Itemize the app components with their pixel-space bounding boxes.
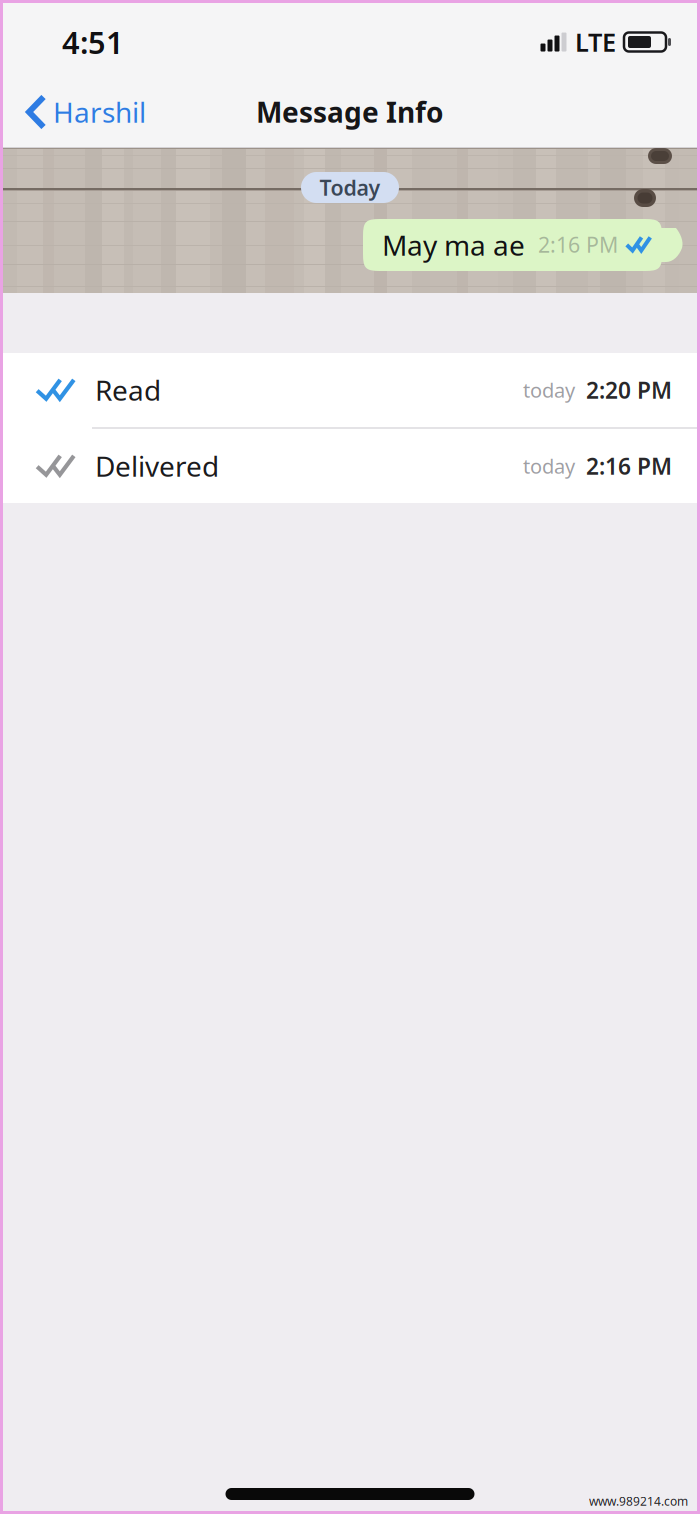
staticText: today xyxy=(523,453,575,479)
staticText: 2:16 PM xyxy=(538,230,618,259)
staticText: 2:16 PM xyxy=(586,451,672,481)
staticText: today xyxy=(523,377,575,403)
staticText: Message Info xyxy=(256,93,444,131)
button[interactable]: Delivered 2:16 PM xyxy=(3,429,697,503)
staticText: Harshil xyxy=(53,93,146,131)
staticText: 2:20 PM xyxy=(586,375,672,405)
staticText: www.989214.com xyxy=(589,1493,688,1509)
button[interactable]: Harshil xyxy=(3,81,160,143)
staticText: Delivered xyxy=(95,447,219,485)
button[interactable]: Read 2:20 PM xyxy=(3,353,697,427)
staticText: 4:51 xyxy=(62,22,124,62)
staticText: LTE xyxy=(575,25,616,59)
staticText: Today xyxy=(319,173,380,202)
staticText: May ma ae xyxy=(382,226,525,264)
staticText: Read xyxy=(95,371,161,409)
